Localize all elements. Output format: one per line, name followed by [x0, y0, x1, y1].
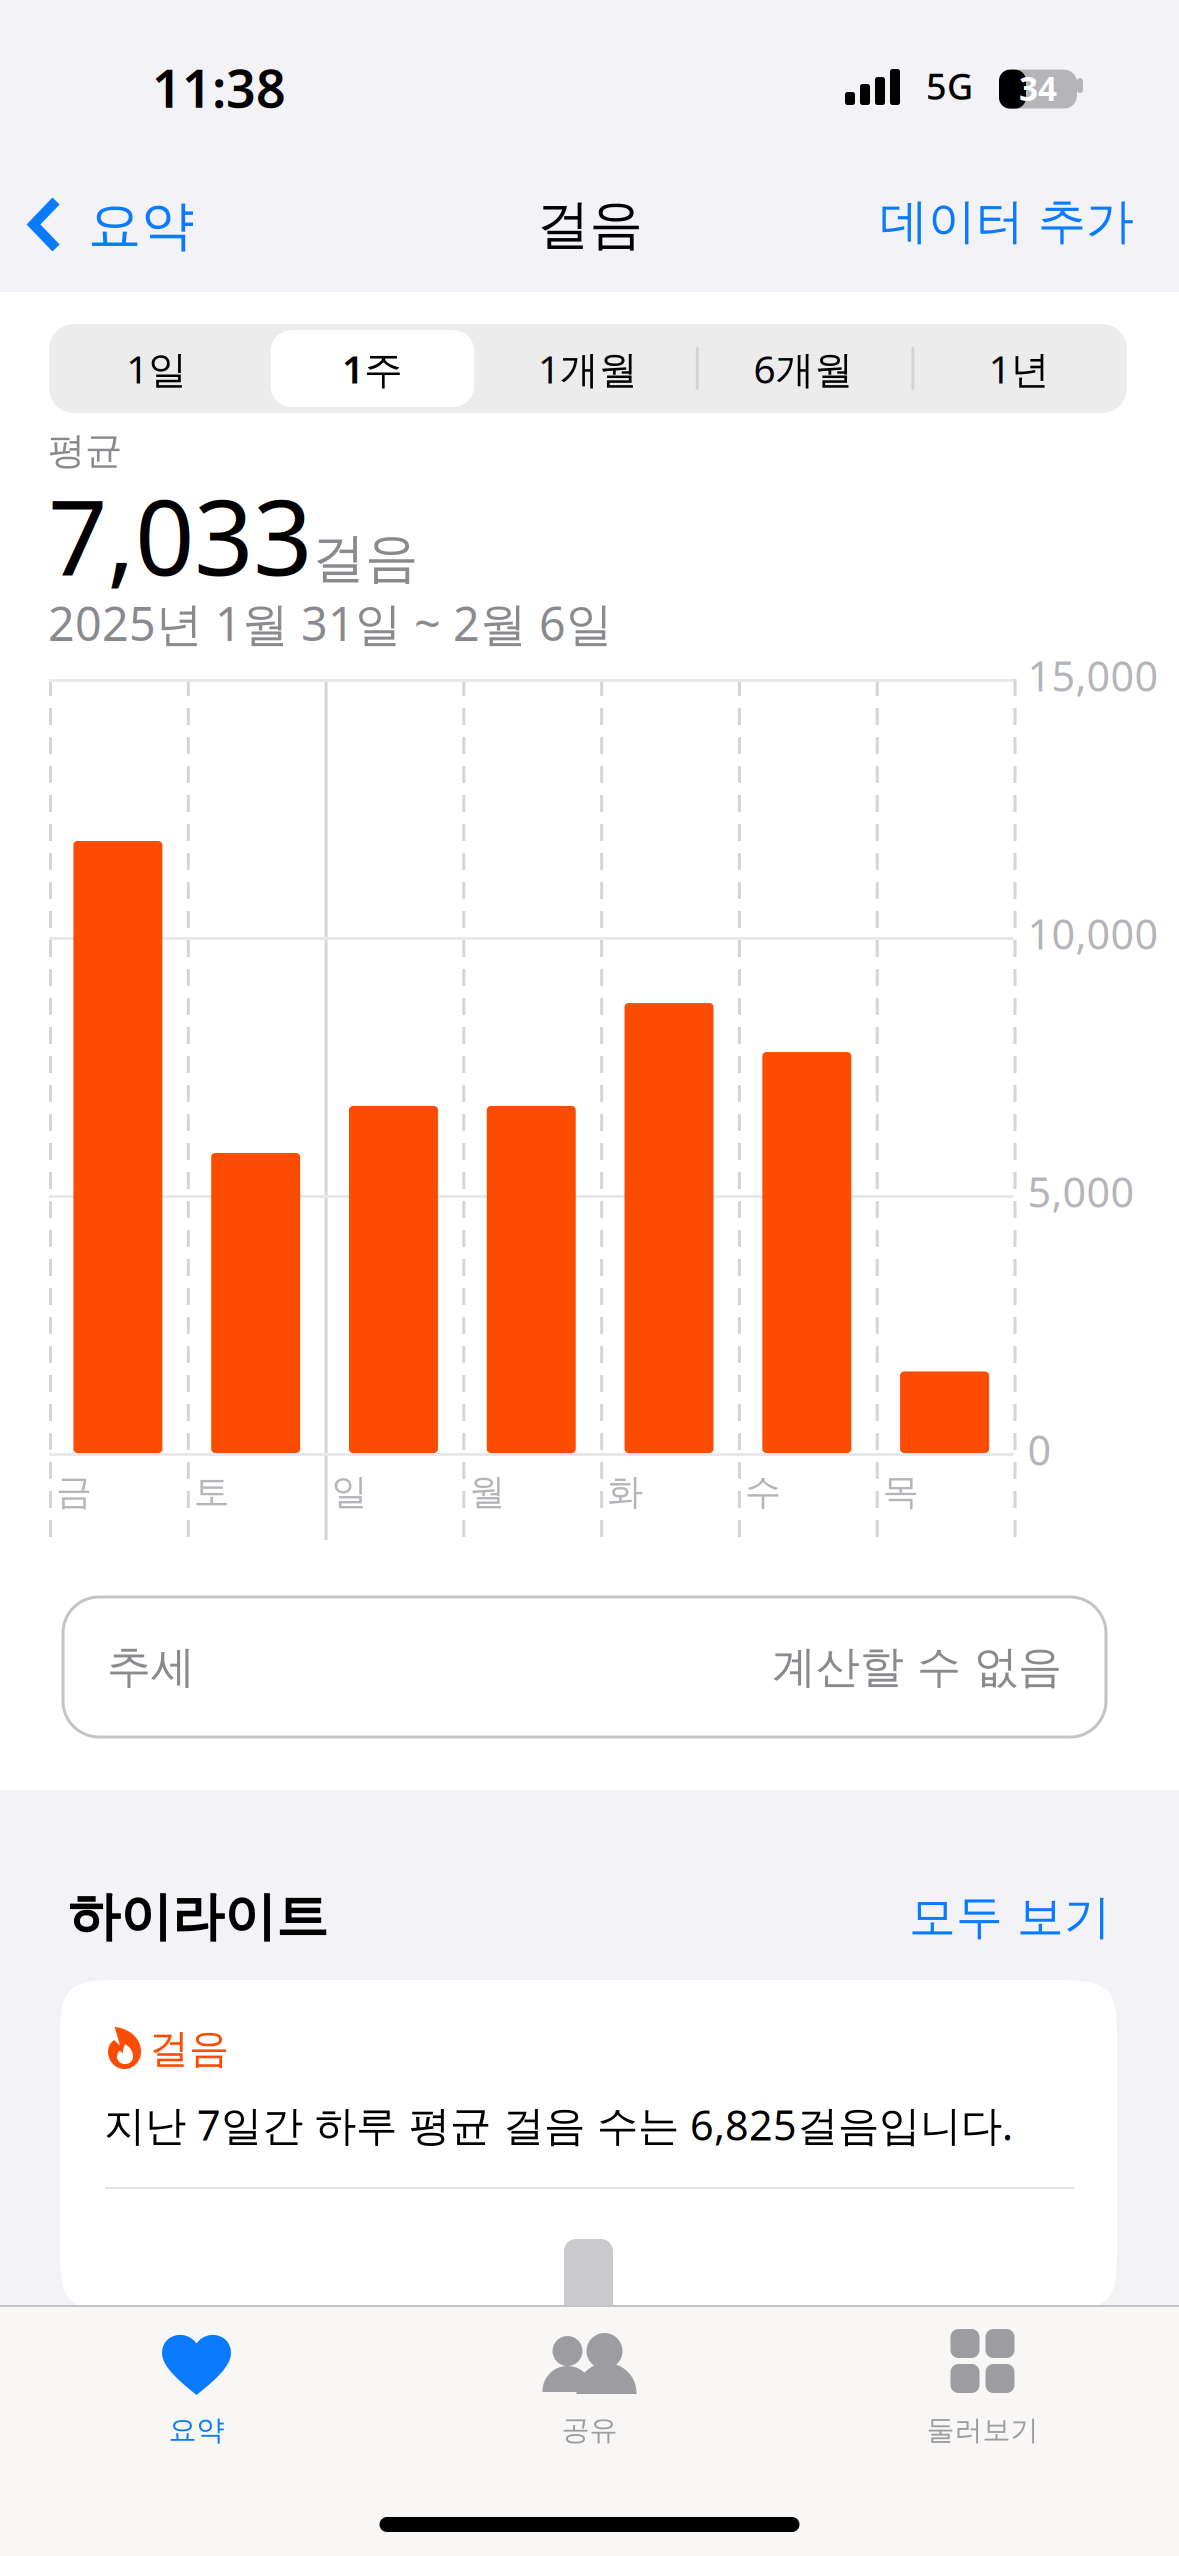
button[interactable]: 1개월	[480, 324, 696, 413]
staticText: 토	[194, 1470, 230, 1514]
staticText: 하이라이트	[68, 1885, 328, 1949]
button[interactable]: 둘러보기	[786, 2307, 1179, 2447]
staticText: 7,033	[48, 466, 312, 604]
staticText: 2025년 1월 31일 ~ 2월 6일	[48, 592, 613, 654]
staticText: 1년	[989, 343, 1050, 394]
button[interactable]: 1일	[49, 324, 265, 413]
staticText: 모두 보기	[909, 1888, 1111, 1946]
button[interactable]: 데이터 추가	[852, 170, 1179, 273]
staticText: 공유	[561, 2413, 617, 2447]
staticText: 5G	[926, 62, 973, 110]
staticText: 계산할 수 없음	[772, 1640, 1062, 1694]
staticText: 걸음	[536, 192, 642, 257]
staticText: 둘러보기	[926, 2413, 1038, 2447]
staticText: 데이터 추가	[880, 192, 1134, 251]
button[interactable]: 6개월	[696, 324, 911, 413]
staticText: 걸음	[312, 526, 418, 591]
staticText: 11:38	[152, 53, 286, 122]
staticText: 6개월	[754, 343, 854, 394]
staticText: 평균	[48, 428, 122, 474]
staticText: 1일	[126, 343, 187, 394]
button[interactable]: 요약	[0, 166, 220, 266]
staticText: 수	[745, 1470, 781, 1514]
staticText: 화	[607, 1470, 643, 1514]
staticText: 5,000	[1027, 1164, 1134, 1219]
button[interactable]: 요약	[0, 2307, 393, 2447]
staticText: 금	[56, 1470, 92, 1514]
staticText: 0	[1027, 1422, 1051, 1477]
button[interactable]: 1주	[265, 324, 480, 413]
button[interactable]: 1년	[911, 324, 1127, 413]
staticText: 요약	[88, 193, 194, 258]
staticText: 34	[1019, 66, 1057, 110]
staticText: 월	[469, 1470, 505, 1514]
button[interactable]: 모두 보기	[909, 1891, 1111, 1949]
staticText: 지난 7일간 하루 평균 걸음 수는 6,825걸음입니다.	[104, 2097, 1013, 2152]
staticText: 10,000	[1027, 906, 1158, 961]
staticText: 일	[332, 1470, 368, 1514]
button[interactable]: 공유	[393, 2307, 786, 2447]
staticText: 목	[883, 1470, 919, 1514]
staticText: 1주	[342, 343, 403, 394]
staticText: 걸음	[149, 2024, 229, 2073]
staticText: 1개월	[538, 343, 638, 394]
staticText: 요약	[168, 2413, 224, 2447]
staticText: 추세	[107, 1640, 195, 1694]
staticText: 15,000	[1027, 648, 1158, 703]
